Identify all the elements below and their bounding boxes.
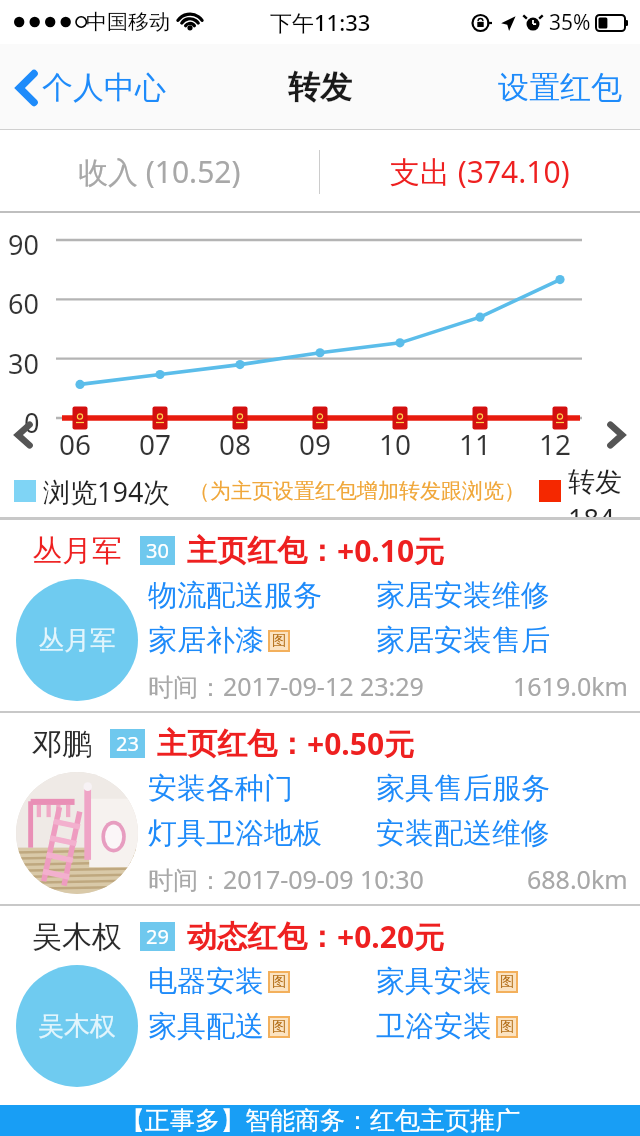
button[interactable]: 吴木权 [0, 906, 640, 1097]
staticText: 家具安装 [376, 963, 492, 1000]
staticText: 支出 (374.10) [390, 151, 570, 192]
staticText: 灯具卫浴地板 [148, 815, 322, 852]
staticText: 动态红包： [187, 918, 337, 956]
button[interactable]: 卫浴安装 [376, 1008, 628, 1045]
staticText: 安装各种门 [148, 770, 293, 807]
staticText: 图 [500, 1018, 514, 1036]
staticText: 下午11:33 [270, 7, 371, 37]
staticText: 物流配送服务 [148, 577, 322, 614]
staticText: +0.50元 [307, 723, 415, 764]
staticText: 图 [500, 973, 514, 991]
staticText: 60 [8, 285, 39, 322]
staticText: 主页红包： [157, 725, 307, 763]
staticText: 图 [272, 973, 286, 991]
staticText: 家居补漆 [148, 622, 264, 659]
staticText: 丛月军 [32, 532, 122, 570]
staticText: 90 [8, 226, 39, 263]
staticText: 吴木权 [32, 918, 122, 956]
button[interactable]: 家具售后服务 [376, 770, 628, 807]
staticText: 丛月军 [38, 624, 116, 657]
staticText: 邓鹏 [32, 725, 92, 763]
staticText: 图 [272, 1018, 286, 1036]
button[interactable]: 电器安装 [148, 963, 376, 1000]
staticText: 卫浴安装 [376, 1008, 492, 1045]
staticText: 【正事多】智能商务：红包主页推广 [120, 1105, 520, 1136]
staticText: 11 [459, 425, 492, 463]
staticText: 29 [146, 923, 169, 950]
staticText: 07 [139, 425, 172, 463]
staticText: 安装配送维修 [376, 815, 550, 852]
staticText: 收入 (10.52) [78, 151, 241, 192]
button[interactable]: 安装各种门 [148, 770, 376, 807]
staticText: 个人中心 [42, 68, 166, 107]
staticText: 电器安装 [148, 963, 264, 1000]
staticText: +0.20元 [337, 916, 445, 957]
staticText: 10 [379, 425, 412, 463]
button[interactable]: 支出 (374.10) [320, 130, 640, 213]
button[interactable]: Next [600, 415, 632, 455]
button[interactable]: Previous [8, 415, 40, 455]
staticText: 30 [8, 345, 39, 382]
button[interactable]: 个人中心 [10, 62, 172, 113]
button[interactable]: 家居安装售后 [376, 622, 628, 659]
button[interactable]: 家居补漆 [148, 622, 376, 659]
staticText: 08 [219, 425, 252, 463]
button[interactable]: 家具安装 [376, 963, 628, 1000]
staticText: 时间：2017-09-09 10:30 [148, 862, 424, 896]
staticText: 家居安装维修 [376, 577, 550, 614]
staticText: 转发184次 [568, 465, 626, 517]
staticText: +0.10元 [337, 530, 445, 571]
staticText: 浏览194次 [43, 473, 171, 510]
staticText: 家居安装售后 [376, 622, 550, 659]
button[interactable]: 【正事多】智能商务：红包主页推广 [0, 1105, 640, 1136]
staticText: 35% [549, 8, 591, 37]
staticText: 09 [299, 425, 332, 463]
button[interactable]: 物流配送服务 [148, 577, 376, 614]
staticText: 06 [59, 425, 92, 463]
staticText: 设置红包 [498, 68, 622, 107]
staticText: 家具配送 [148, 1008, 264, 1045]
button[interactable]: 家居安装维修 [376, 577, 628, 614]
staticText: 图 [272, 632, 286, 650]
staticText: 1619.0km [513, 669, 628, 703]
staticText: 主页红包： [187, 532, 337, 570]
staticText: 30 [146, 537, 169, 564]
staticText: 家具售后服务 [376, 770, 550, 807]
button[interactable]: 丛月军 [0, 520, 640, 711]
button[interactable]: 家具配送 [148, 1008, 376, 1045]
staticText: 23 [116, 730, 139, 757]
staticText: 时间：2017-09-12 23:29 [148, 669, 424, 703]
staticText: 吴木权 [38, 1010, 116, 1043]
button[interactable]: 邓鹏 [0, 713, 640, 904]
staticText: （为主页设置红包增加转发跟浏览） [189, 478, 525, 504]
button[interactable]: 设置红包 [492, 60, 628, 115]
staticText: 0 [24, 404, 40, 441]
button[interactable]: 安装配送维修 [376, 815, 628, 852]
staticText: 转发 [288, 67, 352, 107]
button[interactable]: 灯具卫浴地板 [148, 815, 376, 852]
staticText: 688.0km [527, 862, 628, 896]
button[interactable]: 收入 (10.52) [0, 130, 319, 213]
staticText: 中国移动 [86, 9, 170, 35]
staticText: 12 [539, 425, 572, 463]
